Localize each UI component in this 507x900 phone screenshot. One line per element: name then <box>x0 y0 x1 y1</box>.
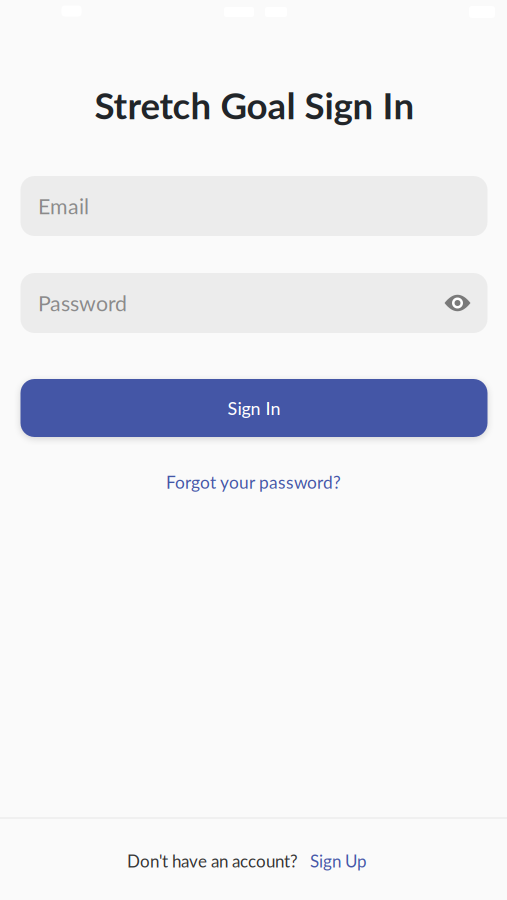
staticText: Sign In <box>227 397 280 419</box>
button[interactable]: Show password <box>444 294 470 312</box>
button[interactable]: Forgot your password? <box>166 472 341 492</box>
staticText: Password <box>38 290 127 316</box>
staticText: Stretch Goal Sign In <box>94 83 414 127</box>
staticText: Email <box>38 193 89 219</box>
button[interactable]: Sign In <box>20 379 487 437</box>
button[interactable]: Sign Up <box>310 851 367 871</box>
staticText: Don't have an account? <box>127 851 298 871</box>
staticText: Sign Up <box>310 851 367 871</box>
staticText: Forgot your password? <box>166 472 341 492</box>
